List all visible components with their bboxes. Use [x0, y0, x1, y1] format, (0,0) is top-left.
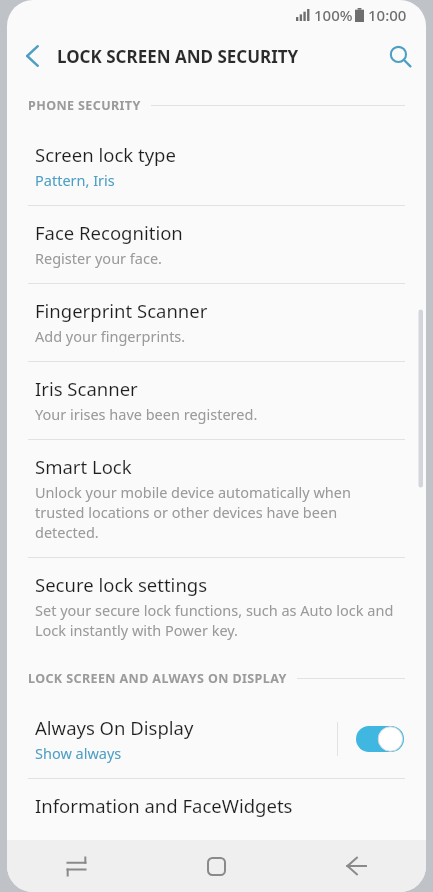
staticText: Pattern, Iris	[35, 170, 115, 190]
button[interactable]: Secure lock settings	[7, 558, 426, 655]
button[interactable]: Back	[286, 840, 426, 892]
staticText: Smart Lock	[35, 454, 132, 479]
staticText: Your irises have been registered.	[35, 404, 258, 424]
staticText: LOCK SCREEN AND ALWAYS ON DISPLAY	[28, 670, 287, 687]
button[interactable]: Iris Scanner	[7, 362, 426, 439]
staticText: Iris Scanner	[35, 376, 138, 401]
button[interactable]: Smart Lock	[7, 440, 426, 557]
staticText: Fingerprint Scanner	[35, 298, 208, 323]
button[interactable]: Search	[374, 30, 426, 82]
button[interactable]: Always On Display	[7, 701, 426, 778]
staticText: Set your secure lock functions, such as …	[35, 600, 402, 640]
staticText: Information and FaceWidgets	[35, 793, 293, 818]
staticText: PHONE SECURITY	[28, 97, 141, 114]
staticText: 10:00	[368, 5, 407, 25]
staticText: Screen lock type	[35, 142, 176, 167]
button[interactable]: Face Recognition	[7, 206, 426, 283]
button[interactable]: Back	[7, 31, 57, 81]
button[interactable]: Always On Display toggle	[356, 726, 404, 752]
staticText: Always On Display	[35, 715, 194, 740]
button[interactable]: Information and FaceWidgets	[7, 779, 426, 833]
staticText: Secure lock settings	[35, 572, 208, 597]
staticText: Add your fingerprints.	[35, 326, 186, 346]
staticText: Register your face.	[35, 248, 163, 268]
button[interactable]: Recents	[7, 840, 146, 892]
button[interactable]: Screen lock type	[7, 128, 426, 205]
staticText: 100%	[314, 5, 353, 25]
button[interactable]: Home	[146, 840, 286, 892]
button[interactable]: Fingerprint Scanner	[7, 284, 426, 361]
staticText: Face Recognition	[35, 220, 183, 245]
staticText: Unlock your mobile device automatically …	[35, 482, 402, 542]
staticText: Show always	[35, 743, 122, 763]
staticText: LOCK SCREEN AND SECURITY	[57, 45, 299, 68]
